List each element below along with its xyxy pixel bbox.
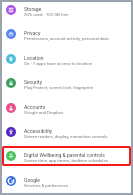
button[interactable]: Security: [2, 71, 131, 95]
button[interactable]: Google: [2, 169, 131, 193]
staticText: Location: [24, 55, 44, 61]
button[interactable]: Location: [2, 47, 131, 71]
staticText: Security: [24, 79, 43, 85]
staticText: Google and Dropbox: [24, 110, 64, 115]
staticText: Google: [24, 177, 40, 183]
button[interactable]: Accounts: [2, 96, 131, 120]
staticText: On - 7 apps have access to location: [24, 61, 93, 66]
staticText: Play Protect, screen lock, fingerprint: [24, 85, 94, 90]
staticText: Storage: [24, 6, 42, 12]
staticText: Services & preferences: [24, 183, 69, 188]
button[interactable]: Digital Wellbeing & parental controls: [2, 144, 131, 168]
staticText: Accounts: [24, 104, 46, 110]
staticText: Digital Wellbeing & parental controls: [24, 152, 105, 158]
staticText: Screen readers, display, interaction con…: [24, 134, 108, 139]
staticText: 20% used - 102 GB free: [24, 12, 69, 17]
button[interactable]: Storage: [2, 0, 131, 22]
button[interactable]: Accessibility: [2, 120, 131, 144]
staticText: Screen time, app timers, bedtime schedul…: [24, 158, 108, 163]
button[interactable]: Privacy: [2, 22, 131, 46]
staticText: Accessibility: [24, 128, 53, 134]
staticText: Permissions, account activity, personal …: [24, 36, 109, 41]
staticText: Privacy: [24, 30, 41, 36]
